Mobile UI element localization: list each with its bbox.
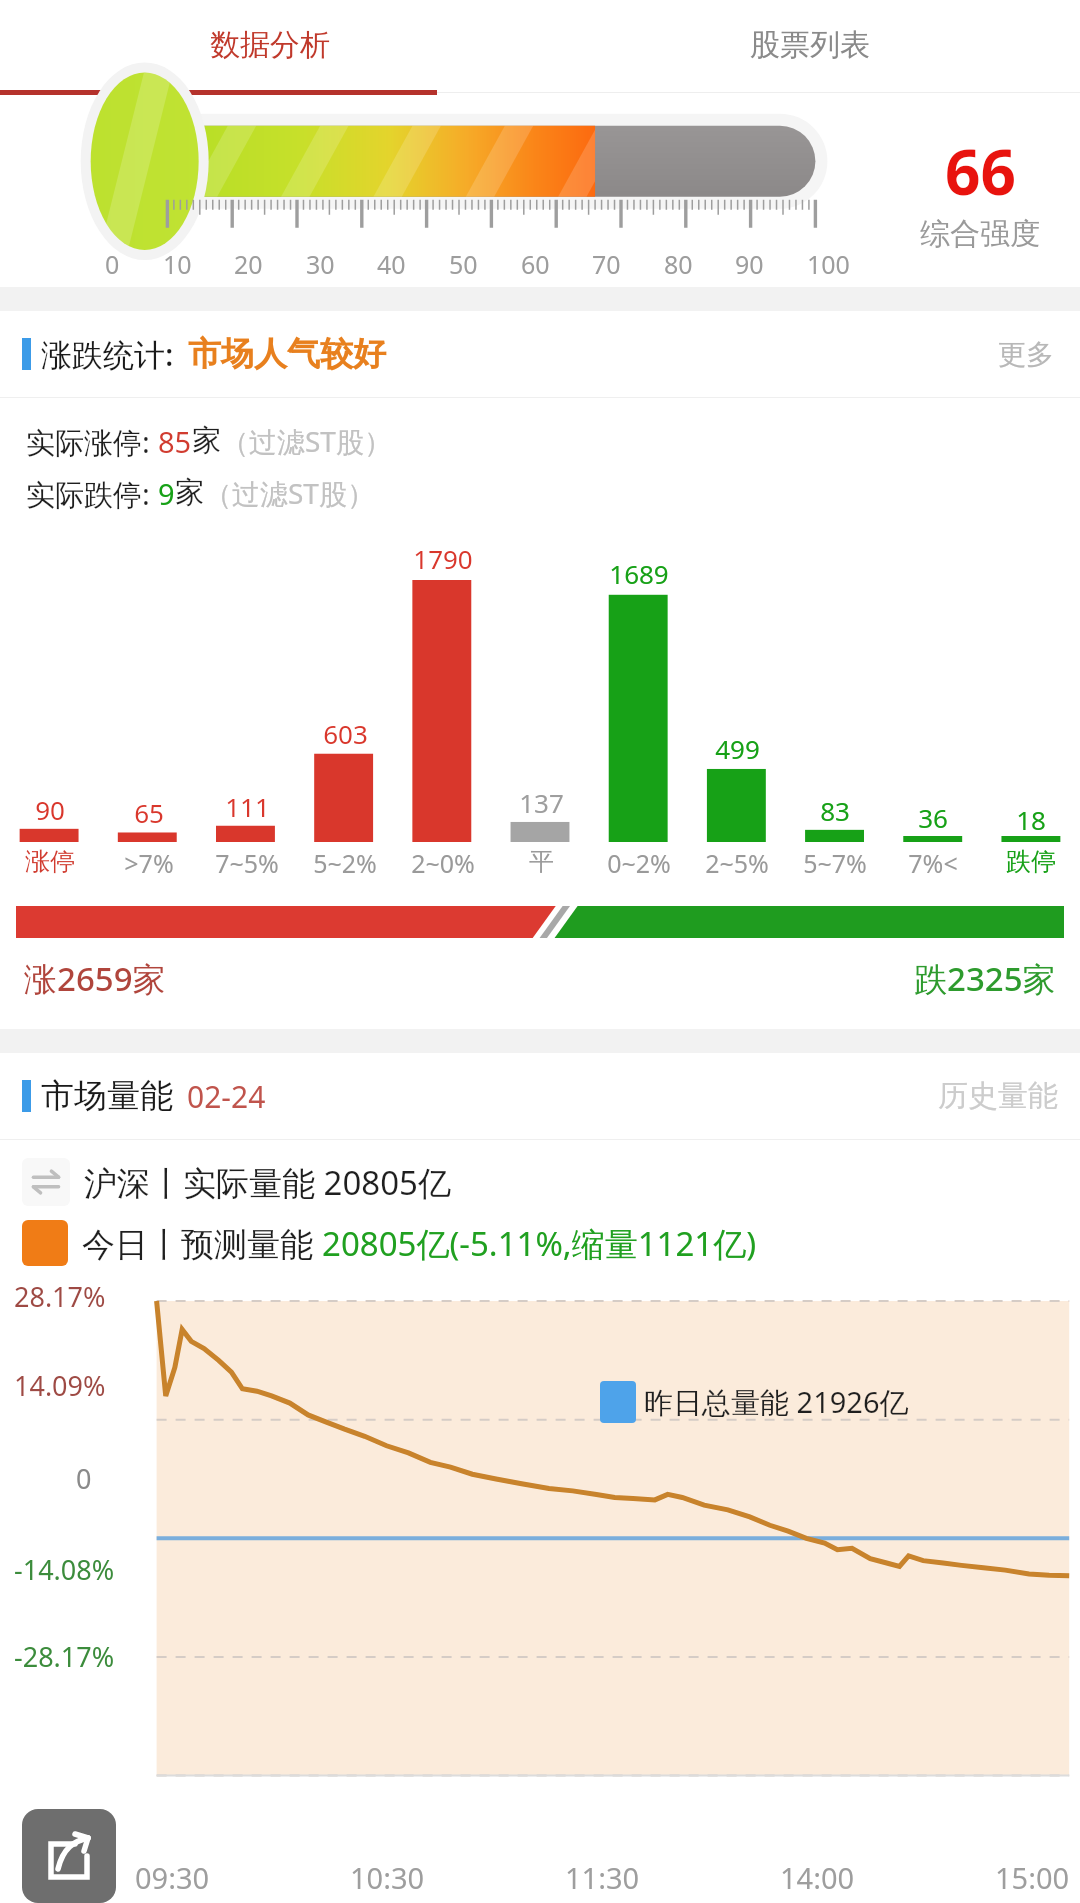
staticText: 90: [735, 247, 764, 281]
staticText: 5~2%: [313, 846, 377, 880]
staticText: 1790: [413, 541, 473, 576]
staticText: 昨日总量能 21926亿: [644, 1382, 909, 1422]
staticText: 90: [35, 792, 65, 827]
staticText: 9: [158, 474, 175, 513]
staticText: 20805亿(-5.11%,缩量1121亿): [322, 1221, 757, 1266]
button[interactable]: 涨跌统计:: [0, 311, 1080, 397]
staticText: 02-24: [187, 1076, 266, 1117]
staticText: 80: [664, 247, 693, 281]
staticText: 实际涨停:: [26, 422, 158, 462]
staticText: 平: [529, 846, 554, 877]
staticText: 09:30: [135, 1858, 210, 1897]
staticText: 40: [377, 247, 406, 281]
staticText: 83: [820, 793, 850, 828]
button[interactable]: 数据分析: [0, 0, 540, 90]
staticText: 市场人气较好: [188, 333, 386, 375]
staticText: 66: [945, 129, 1016, 213]
staticText: （过滤ST股）: [221, 422, 392, 460]
staticText: 65: [134, 795, 164, 830]
staticText: 家: [192, 422, 221, 459]
staticText: 15:00: [995, 1858, 1070, 1897]
staticText: 100: [807, 247, 850, 281]
staticText: 家: [175, 474, 204, 511]
staticText: 涨停: [25, 846, 75, 877]
staticText: 5~7%: [803, 846, 867, 880]
staticText: （过滤ST股）: [204, 474, 375, 512]
staticText: 30: [306, 247, 335, 281]
staticText: 市场量能: [41, 1075, 173, 1117]
staticText: 18: [1016, 802, 1046, 837]
staticText: 10: [163, 247, 192, 281]
staticText: 0~2%: [607, 846, 671, 880]
staticText: 50: [449, 247, 478, 281]
staticText: 1689: [609, 556, 669, 591]
staticText: 36: [918, 800, 948, 835]
staticText: 0: [76, 1460, 92, 1497]
staticText: 股票列表: [750, 26, 870, 64]
staticText: -14.08%: [14, 1551, 115, 1588]
staticText: >7%: [124, 846, 174, 880]
staticText: 综合强度: [920, 215, 1040, 253]
staticText: 14.09%: [14, 1367, 106, 1404]
button[interactable]: 股票列表: [540, 0, 1080, 90]
staticText: 85: [158, 422, 192, 461]
staticText: 0: [105, 247, 120, 281]
staticText: 今日丨预测量能: [82, 1221, 322, 1266]
staticText: 沪深丨实际量能 20805亿: [84, 1160, 451, 1205]
staticText: 60: [521, 247, 550, 281]
staticText: 更多: [998, 337, 1054, 372]
staticText: 111: [225, 789, 270, 824]
staticText: 跌停: [1006, 846, 1056, 877]
button[interactable]: 市场量能: [0, 1053, 1080, 1139]
staticText: 7~5%: [215, 846, 279, 880]
staticText: 数据分析: [210, 26, 330, 64]
staticText: 499: [715, 731, 760, 766]
staticText: 跌2325家: [914, 956, 1056, 1001]
button[interactable]: 分享: [22, 1809, 116, 1903]
staticText: 实际跌停:: [26, 474, 158, 514]
staticText: 28.17%: [14, 1278, 106, 1315]
staticText: 历史量能: [938, 1077, 1058, 1115]
staticText: 11:30: [565, 1858, 640, 1897]
staticText: 7%<: [908, 846, 958, 880]
staticText: 2~0%: [411, 846, 475, 880]
staticText: 70: [592, 247, 621, 281]
staticText: 涨2659家: [24, 956, 166, 1001]
staticText: -28.17%: [14, 1638, 115, 1675]
staticText: 2~5%: [705, 846, 769, 880]
staticText: 10:30: [350, 1858, 425, 1897]
staticText: 603: [323, 716, 368, 751]
staticText: 涨跌统计:: [41, 333, 174, 375]
staticText: 20: [234, 247, 263, 281]
staticText: 137: [519, 785, 564, 820]
staticText: 14:00: [780, 1858, 855, 1897]
